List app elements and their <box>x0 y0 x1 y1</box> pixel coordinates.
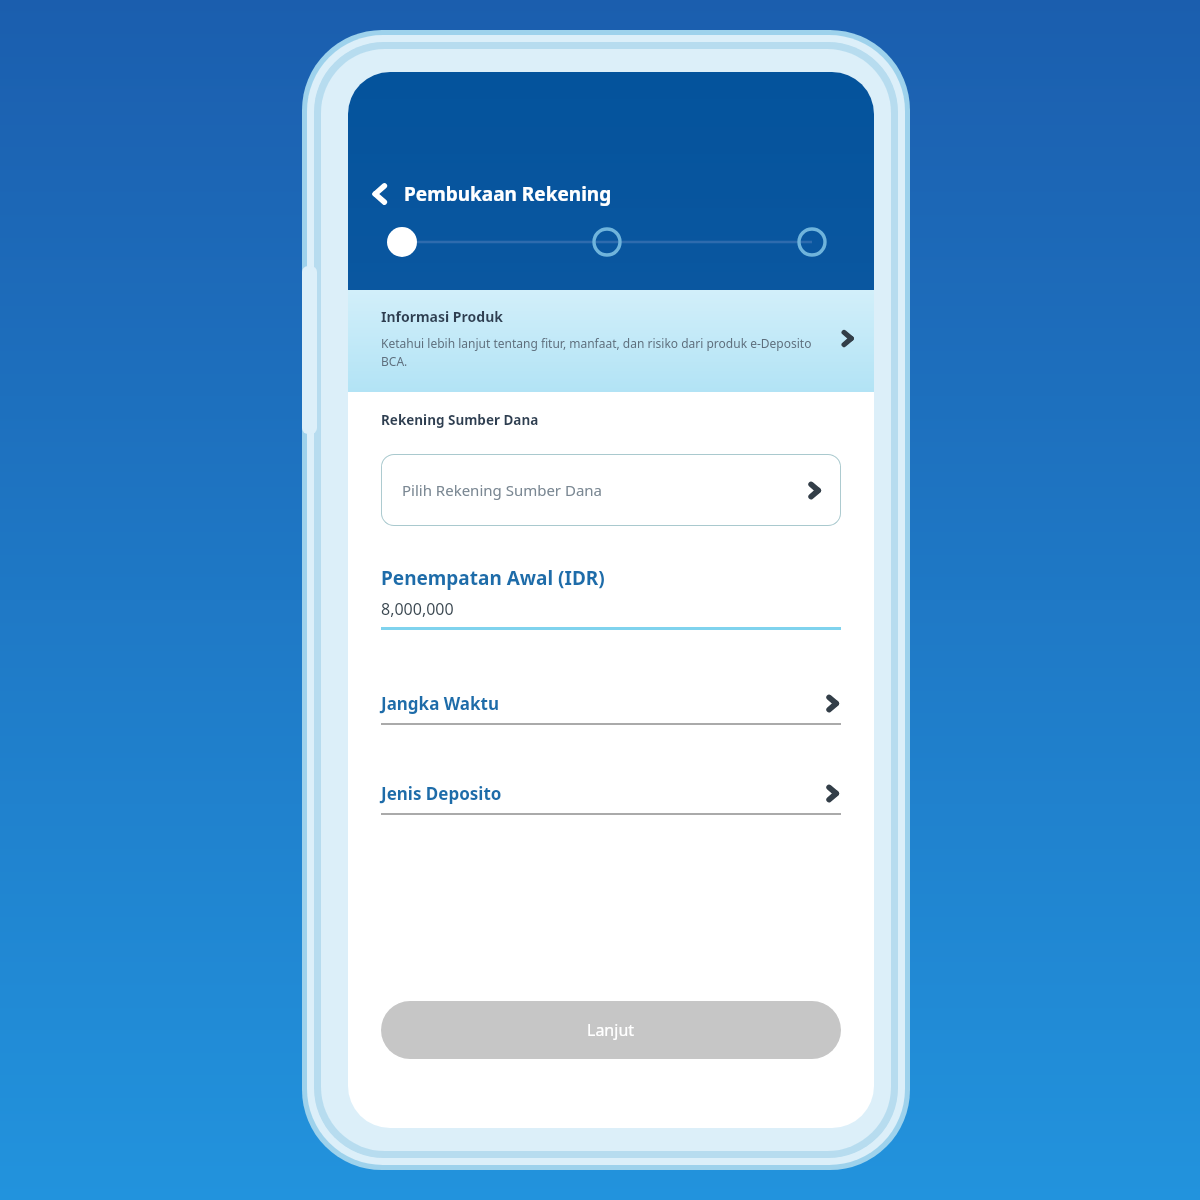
staticText: Pembukaan Rekening <box>404 181 612 207</box>
button[interactable]: Jangka Waktu <box>381 692 841 725</box>
button[interactable]: Pilih Rekening Sumber Dana <box>381 454 841 526</box>
staticText: Lanjut <box>587 1019 635 1041</box>
staticText: Jangka Waktu <box>381 692 824 715</box>
button[interactable]: Lanjut <box>381 1001 841 1059</box>
staticText: Rekening Sumber Dana <box>381 411 539 429</box>
button[interactable]: Jenis Deposito <box>381 782 841 815</box>
staticText: Pilih Rekening Sumber Dana <box>402 480 806 500</box>
staticText: Penempatan Awal (IDR) <box>381 565 605 591</box>
button[interactable]: Informasi Produk <box>348 290 874 392</box>
staticText: Jenis Deposito <box>381 782 824 805</box>
button[interactable]: Back <box>360 174 400 214</box>
staticText: Ketahui lebih lanjut tentang fitur, manf… <box>381 335 833 370</box>
staticText: Informasi Produk <box>381 307 503 326</box>
staticText: 8,000,000 <box>381 598 454 620</box>
